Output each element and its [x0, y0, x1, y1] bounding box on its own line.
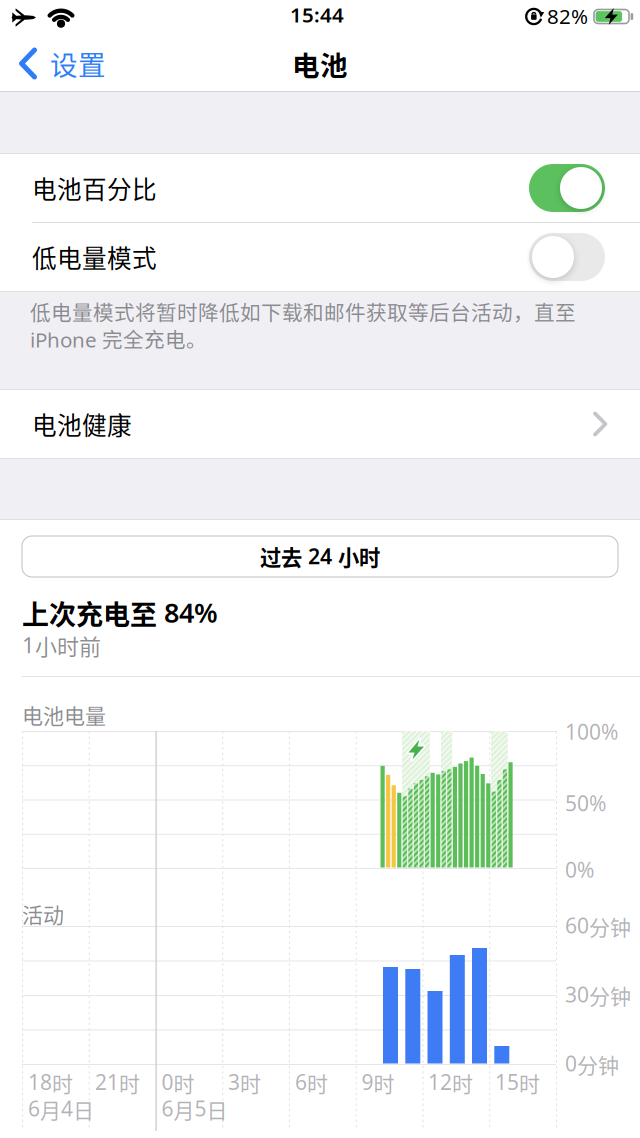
staticText: 电池健康 — [32, 406, 132, 442]
staticText: 0分钟 — [565, 1049, 619, 1079]
staticText: 低电量模式 — [32, 239, 157, 275]
staticText: 50% — [565, 789, 606, 817]
staticText: 18时 — [28, 1067, 73, 1098]
staticText: 活动 — [22, 898, 64, 929]
staticText: iPhone 完全充电。 — [30, 323, 207, 353]
button[interactable]: 电池百分比 — [0, 154, 640, 222]
staticText: 6时 — [295, 1067, 328, 1098]
button[interactable]: 低电量模式 — [0, 223, 640, 291]
staticText: 15时 — [495, 1067, 540, 1098]
staticText: 9时 — [361, 1067, 394, 1098]
staticText: 82% — [547, 2, 588, 30]
staticText: 电池电量 — [22, 699, 106, 730]
staticText: 6月4日 — [28, 1094, 94, 1124]
staticText: 电池 — [292, 44, 348, 84]
staticText: 设置 — [50, 44, 106, 83]
staticText: 15:44 — [290, 0, 344, 28]
staticText: 低电量模式将暂时降低如下载和邮件获取等后台活动，直至 — [30, 297, 576, 326]
staticText: 3时 — [228, 1067, 261, 1098]
button[interactable]: 电池健康 — [0, 390, 640, 458]
staticText: 0% — [565, 855, 594, 884]
staticText: 30分钟 — [565, 980, 631, 1010]
staticText: 上次充电至 84% — [22, 593, 218, 633]
staticText: 100% — [565, 717, 618, 746]
staticText: 6月5日 — [161, 1094, 227, 1124]
staticText: 60分钟 — [565, 911, 631, 941]
staticText: 1小时前 — [22, 630, 101, 661]
button[interactable]: 过去 24 小时 — [22, 536, 618, 577]
staticText: 过去 24 小时 — [260, 541, 380, 572]
staticText: 电池百分比 — [32, 170, 157, 206]
staticText: 21时 — [95, 1067, 140, 1098]
staticText: 0时 — [161, 1067, 194, 1098]
button[interactable]: 返回设置 — [19, 44, 106, 82]
staticText: 12时 — [428, 1067, 473, 1098]
